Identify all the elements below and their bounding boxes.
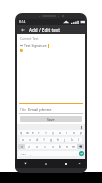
button[interactable]: p	[77, 130, 84, 135]
staticText: i	[66, 131, 67, 135]
staticText: Add / Edit text	[29, 27, 61, 33]
staticText: k	[71, 138, 73, 142]
button[interactable]: b	[56, 144, 63, 149]
button[interactable]: m	[70, 144, 77, 149]
button[interactable]: t	[42, 130, 49, 135]
staticText: m	[72, 145, 75, 149]
button[interactable]: Recents	[62, 160, 69, 167]
staticText: x	[36, 145, 38, 149]
staticText: r	[38, 131, 40, 135]
button[interactable]: g	[47, 137, 54, 142]
button[interactable]: c	[41, 144, 49, 149]
button[interactable]: i	[63, 130, 70, 135]
button[interactable]: Save	[20, 116, 82, 122]
staticText: ,	[30, 152, 31, 156]
button[interactable]: x	[33, 144, 41, 149]
staticText: Current Text	[20, 37, 39, 41]
button[interactable]: h	[54, 137, 61, 142]
staticText: t	[45, 131, 47, 135]
button[interactable]: o	[70, 130, 77, 135]
staticText: s	[29, 138, 31, 142]
button[interactable]: w	[24, 130, 30, 135]
staticText: u	[59, 131, 61, 135]
button[interactable]: r	[36, 130, 42, 135]
staticText: w	[26, 131, 29, 135]
button[interactable]: Voice input	[79, 125, 83, 129]
staticText: Title	[20, 108, 26, 112]
button[interactable]: f	[40, 137, 47, 142]
staticText: ?123	[20, 152, 26, 155]
button[interactable]: Back	[19, 26, 27, 34]
button[interactable]: ?123	[18, 151, 27, 156]
button[interactable]: l	[75, 137, 82, 142]
staticText: Email phone	[28, 107, 52, 112]
staticText: c	[44, 145, 46, 149]
button[interactable]: n	[63, 144, 70, 149]
button[interactable]: Enter	[79, 151, 84, 156]
button[interactable]: Hide keyboard	[76, 160, 83, 167]
button[interactable]: .	[73, 151, 79, 156]
staticText: Save	[47, 117, 55, 122]
staticText: .	[76, 152, 77, 156]
button[interactable]: Shift	[18, 144, 25, 149]
staticText: f	[43, 138, 45, 142]
button[interactable]: z	[25, 144, 33, 149]
staticText: n	[66, 145, 68, 149]
button[interactable]: a	[20, 137, 26, 142]
staticText: l	[78, 138, 79, 142]
staticText: 8:14	[19, 20, 26, 24]
button[interactable]: q	[18, 130, 24, 135]
staticText: d	[36, 138, 38, 142]
staticText: q	[20, 131, 22, 135]
staticText: g	[50, 138, 52, 142]
button[interactable]: v	[49, 144, 56, 149]
button[interactable]: Backspace	[77, 144, 84, 149]
staticText: v	[52, 145, 54, 149]
button[interactable]: d	[33, 137, 40, 142]
staticText: a	[22, 138, 24, 142]
button[interactable]: Home	[42, 160, 49, 167]
staticText: h	[57, 138, 59, 142]
button[interactable]: Text Signature	[20, 43, 85, 48]
button[interactable]: j	[61, 137, 68, 142]
staticText: j	[64, 138, 65, 142]
staticText: b	[59, 145, 61, 149]
staticText: o	[73, 131, 75, 135]
staticText: p	[80, 131, 82, 135]
staticText: z	[28, 145, 30, 149]
button[interactable]: s	[26, 137, 33, 142]
button[interactable]: u	[56, 130, 63, 135]
staticText: Text Signature	[24, 43, 47, 48]
button[interactable]: k	[68, 137, 75, 142]
button[interactable]: Back	[22, 160, 29, 167]
staticText: e	[32, 131, 34, 135]
staticText: y	[52, 131, 54, 135]
button[interactable]: e	[30, 130, 36, 135]
button[interactable]: ,	[27, 151, 33, 156]
button[interactable]: y	[49, 130, 56, 135]
